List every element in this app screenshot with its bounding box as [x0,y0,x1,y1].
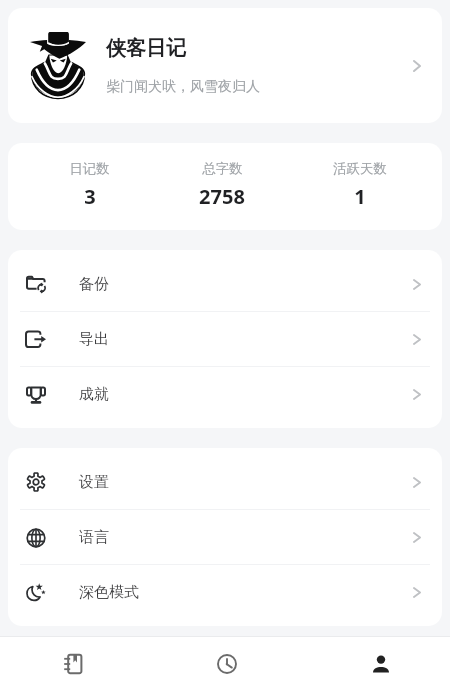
button[interactable]: History [205,645,249,682]
button[interactable]: Journal [51,645,95,682]
staticText: 成就 [79,385,109,404]
button[interactable]: 深色模式 [8,565,442,620]
button[interactable]: 语言 [8,510,442,565]
staticText: 导出 [79,330,109,349]
button[interactable]: Profile [359,645,403,682]
staticText: 2758 [199,183,245,210]
staticText: 设置 [79,473,109,492]
staticText: 活跃天数 [333,160,387,177]
staticText: 语言 [79,528,109,547]
button[interactable]: 成就 [8,367,442,422]
button[interactable]: 备份 [8,256,442,312]
staticText: 深色模式 [79,583,139,602]
staticText: 侠客日记 [106,36,186,61]
staticText: 柴门闻犬吠，风雪夜归人 [106,78,260,96]
button[interactable]: 导出 [8,312,442,367]
staticText: 3 [84,183,96,210]
staticText: 1 [354,183,366,210]
staticText: 总字数 [202,160,243,177]
staticText: 备份 [79,275,109,294]
button[interactable]: 侠客日记 [8,8,442,123]
button[interactable]: 设置 [8,454,442,510]
staticText: 日记数 [69,160,110,177]
